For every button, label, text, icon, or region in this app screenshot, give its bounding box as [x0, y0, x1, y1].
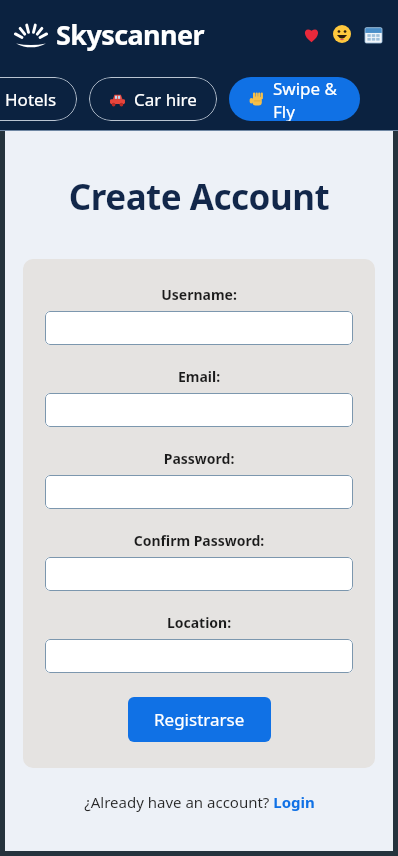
button[interactable]: Registrarse — [128, 697, 271, 742]
staticText: Location: — [45, 613, 353, 632]
staticText: Skyscanner — [56, 16, 204, 53]
button[interactable]: Hotels — [0, 77, 77, 121]
button[interactable]: Confirm Password: — [45, 557, 353, 591]
button[interactable]: Car hire — [89, 77, 217, 121]
button[interactable]: Skyscanner home — [14, 16, 204, 53]
button[interactable]: Favourites — [300, 23, 322, 45]
button[interactable]: Calendar — [362, 23, 384, 45]
staticText: Username: — [45, 285, 353, 304]
button[interactable]: Location: — [45, 639, 353, 673]
button[interactable]: Swipe & Fly — [229, 77, 360, 121]
staticText: Password: — [45, 449, 353, 468]
button[interactable]: Username: — [45, 311, 353, 345]
staticText: Create Account — [5, 173, 393, 221]
button[interactable]: Email: — [45, 393, 353, 427]
staticText: Car hire — [134, 88, 197, 111]
button[interactable]: Password: — [45, 475, 353, 509]
staticText: Confirm Password: — [45, 531, 353, 550]
button[interactable]: Profile — [331, 23, 353, 45]
button[interactable]: ¿Already have an account? Login — [78, 788, 321, 816]
staticText: Swipe & Fly — [273, 77, 340, 121]
staticText: Hotels — [5, 88, 57, 111]
staticText: Registrarse — [154, 708, 245, 731]
staticText: Email: — [45, 367, 353, 386]
staticText: ¿Already have an account? Login — [84, 792, 315, 812]
